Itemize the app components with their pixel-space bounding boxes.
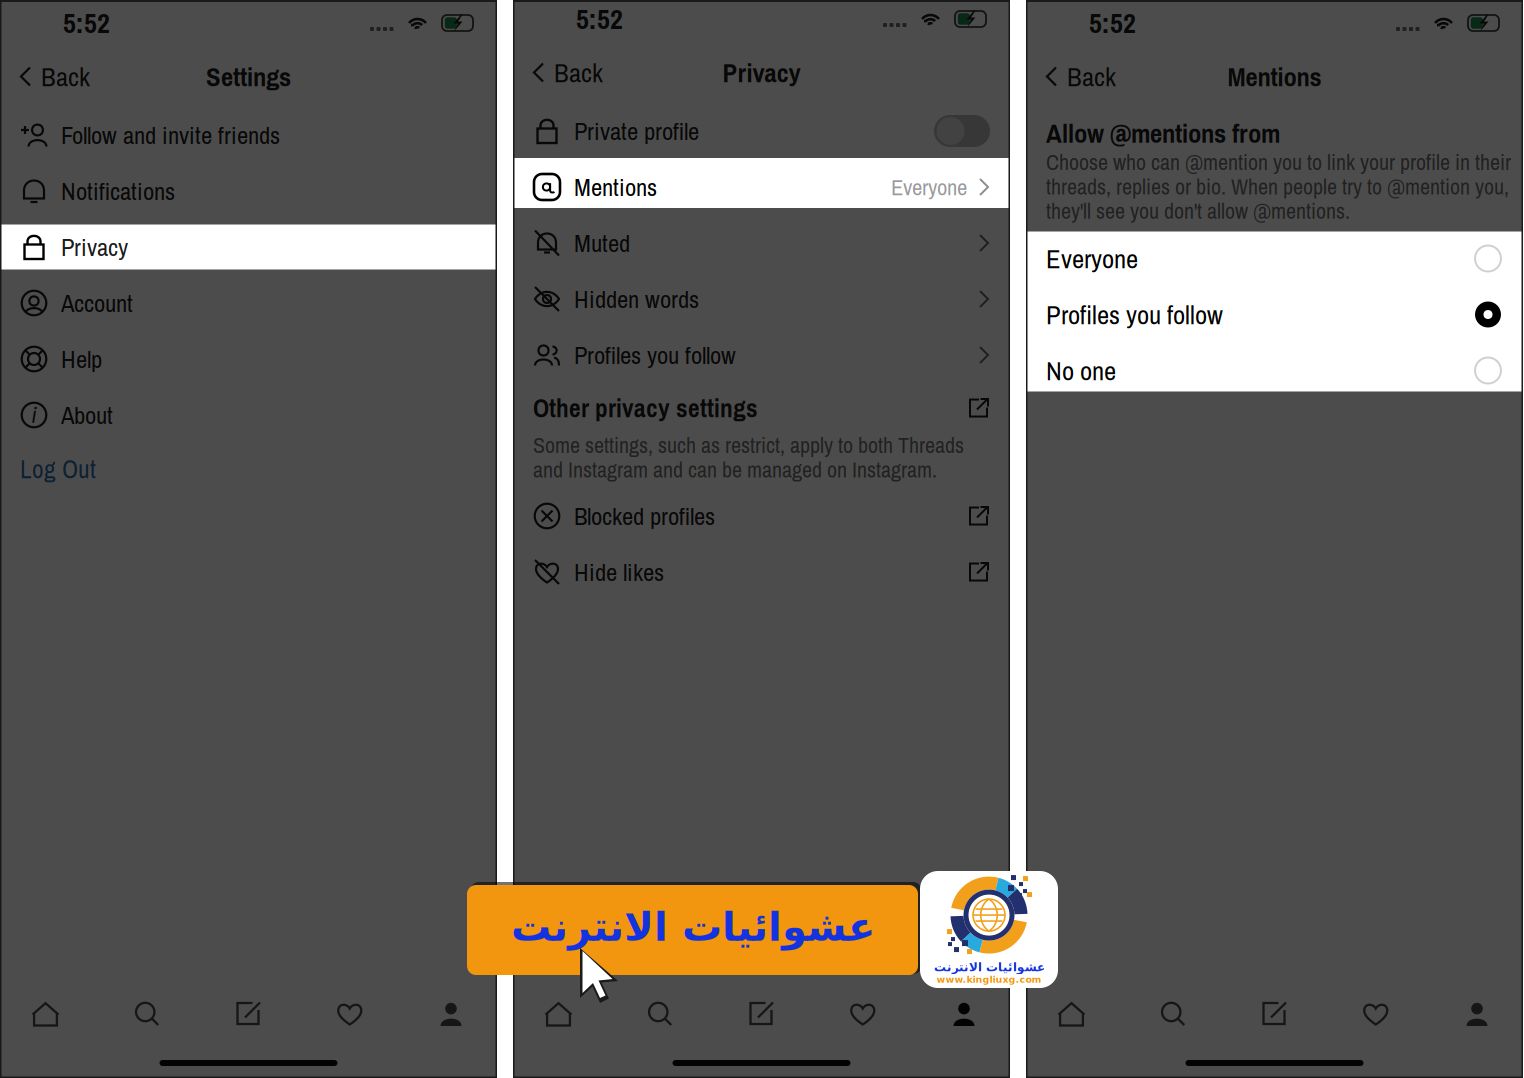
button[interactable]: Hidden words — [513, 271, 1010, 327]
staticText: Privacy — [722, 54, 800, 90]
button[interactable]: Home — [1044, 994, 1100, 1034]
button[interactable]: Mentions — [513, 159, 1010, 215]
button[interactable]: Blocked profiles — [513, 488, 1010, 544]
staticText: 5:52 — [63, 4, 110, 42]
button[interactable]: Back — [1026, 51, 1126, 101]
button[interactable]: Create — [733, 994, 789, 1034]
button[interactable]: Profile — [423, 994, 479, 1034]
staticText: i — [31, 402, 36, 428]
button[interactable]: Profile — [1449, 994, 1505, 1034]
button[interactable]: No one — [1026, 342, 1523, 398]
button[interactable]: Search — [632, 994, 688, 1034]
staticText: عشوائيات الانترنت — [933, 960, 1044, 974]
button[interactable]: Muted — [513, 215, 1010, 271]
staticText: Profiles you follow — [1046, 296, 1223, 332]
button[interactable]: Activity — [835, 994, 891, 1034]
staticText: Allow @mentions from — [1046, 115, 1280, 151]
button[interactable]: Follow and invite friends — [0, 107, 497, 163]
button[interactable]: Hide likes — [513, 544, 1010, 600]
staticText: Mentions — [1227, 58, 1321, 94]
button[interactable]: Create — [220, 994, 276, 1034]
staticText: Account — [61, 286, 133, 320]
button[interactable]: Log Out — [0, 443, 497, 495]
staticText: Muted — [574, 226, 630, 260]
staticText: عشوائيات الانترنت — [510, 904, 874, 950]
staticText: Hidden words — [574, 282, 699, 316]
button[interactable]: Profile — [936, 994, 992, 1034]
staticText: Mentions — [574, 170, 657, 204]
staticText: Follow and invite friends — [61, 118, 280, 152]
staticText: Other privacy settings — [533, 391, 758, 425]
staticText: 5:52 — [576, 0, 623, 38]
staticText: Back — [1067, 58, 1116, 94]
staticText: Everyone — [1046, 240, 1138, 276]
button[interactable]: Help — [0, 331, 497, 387]
staticText: Log Out — [20, 452, 96, 486]
button[interactable]: Profiles you follow — [513, 327, 1010, 383]
button[interactable]: Back — [0, 51, 100, 101]
staticText: Everyone — [891, 172, 967, 202]
button[interactable]: Profiles you follow — [1026, 286, 1523, 342]
staticText: Back — [41, 58, 90, 94]
staticText: Help — [61, 342, 102, 376]
staticText: Settings — [206, 58, 291, 94]
staticText: Blocked profiles — [574, 499, 715, 533]
button[interactable]: Home — [18, 994, 74, 1034]
staticText: About — [61, 398, 113, 432]
button[interactable]: Create — [1246, 994, 1302, 1034]
staticText: Notifications — [61, 174, 175, 208]
staticText: Some settings, such as restrict, apply t… — [533, 433, 964, 482]
button[interactable]: Search — [119, 994, 175, 1034]
button[interactable]: Privacy — [0, 219, 497, 275]
staticText: 5:52 — [1089, 4, 1136, 42]
button[interactable]: Notifications — [0, 163, 497, 219]
button[interactable]: Activity — [1348, 994, 1404, 1034]
button[interactable]: Everyone — [1026, 230, 1523, 286]
staticText: Choose who can @mention you to link your… — [1046, 150, 1511, 223]
button[interactable]: Account — [0, 275, 497, 331]
staticText: Private profile — [574, 114, 699, 148]
button[interactable]: i — [0, 387, 497, 443]
staticText: Back — [554, 54, 603, 90]
button[interactable]: Search — [1145, 994, 1201, 1034]
button[interactable]: Private profile — [513, 103, 1010, 159]
staticText: Hide likes — [574, 555, 664, 589]
button[interactable]: Back — [513, 47, 613, 97]
staticText: www.kingliuxg.com — [936, 974, 1041, 985]
staticText: No one — [1046, 352, 1116, 388]
staticText: Privacy — [61, 230, 128, 264]
button[interactable]: Home — [531, 994, 587, 1034]
staticText: Profiles you follow — [574, 338, 736, 372]
button[interactable]: Activity — [322, 994, 378, 1034]
